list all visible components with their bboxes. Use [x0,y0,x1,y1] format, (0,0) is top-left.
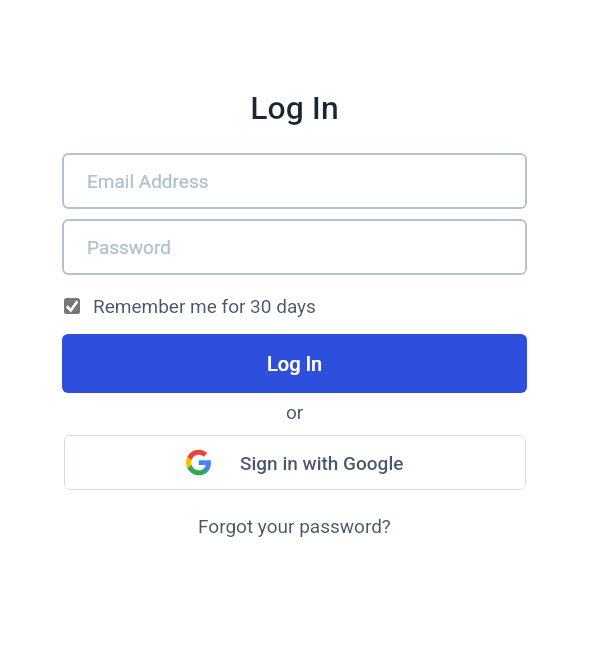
staticText: Email Address [87,170,209,192]
button[interactable]: Google [64,435,526,490]
staticText: Remember me for 30 days [93,295,316,317]
other: Google [186,450,211,475]
staticText: Password [87,236,171,258]
button[interactable]: Log In [62,334,527,393]
button[interactable]: Forgot your password? [198,515,391,537]
staticText: Sign in with Google [240,452,404,474]
staticText: Log In [62,89,527,127]
button[interactable]: Password [62,219,527,275]
staticText: or [286,401,304,423]
button[interactable]: Remember me, checked [62,294,316,318]
button[interactable]: Email Address [62,153,527,209]
other: Remember me, checked [64,298,80,314]
staticText: Log In [267,352,323,375]
